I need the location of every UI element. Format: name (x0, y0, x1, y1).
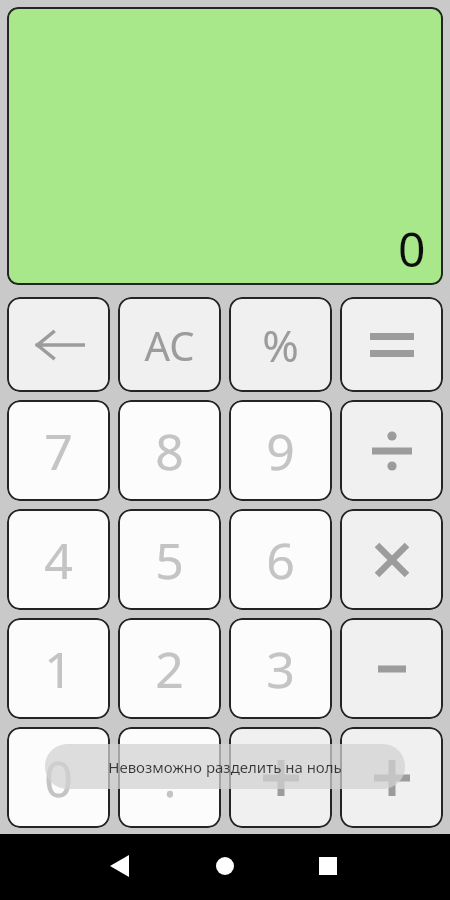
button[interactable]: Multiply (340, 509, 443, 610)
staticText: 9 (266, 417, 295, 485)
button[interactable]: Divide (340, 400, 443, 501)
button[interactable]: 6 (229, 509, 332, 610)
button[interactable]: 0 (7, 727, 110, 828)
staticText: % (262, 315, 299, 375)
button[interactable]: . (118, 727, 221, 828)
staticText: 0 (44, 744, 73, 812)
staticText: 5 (155, 526, 184, 594)
button[interactable]: 2 (118, 618, 221, 719)
staticText: 4 (44, 526, 73, 594)
button[interactable]: % (229, 297, 332, 392)
staticText: 2 (155, 635, 184, 703)
button[interactable]: 4 (7, 509, 110, 610)
button[interactable]: 1 (7, 618, 110, 719)
button[interactable]: 3 (229, 618, 332, 719)
button[interactable]: 8 (118, 400, 221, 501)
button[interactable]: AC (118, 297, 221, 392)
staticText: 8 (155, 417, 184, 485)
staticText: Невозможно разделить на ноль (108, 757, 342, 777)
staticText: AC (144, 318, 195, 372)
button[interactable]: Equals (340, 297, 443, 392)
staticText: 1 (44, 635, 73, 703)
staticText: . (163, 744, 177, 812)
staticText: 3 (266, 635, 295, 703)
staticText: 7 (44, 417, 73, 485)
button[interactable]: Plus (229, 727, 332, 828)
button[interactable]: Plus (340, 727, 443, 828)
button[interactable]: 7 (7, 400, 110, 501)
button[interactable]: 5 (118, 509, 221, 610)
button[interactable]: Minus (340, 618, 443, 719)
button[interactable]: Backspace (7, 297, 110, 392)
staticText: 6 (266, 526, 295, 594)
button[interactable]: 9 (229, 400, 332, 501)
staticText: 0 (398, 216, 426, 281)
